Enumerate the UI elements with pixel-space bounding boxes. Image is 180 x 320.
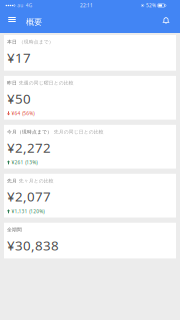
staticText: ¥1,131 bbox=[12, 208, 28, 214]
staticText: (120%) bbox=[29, 208, 44, 214]
staticText: 昨日 bbox=[7, 80, 17, 86]
staticText: 先月の同じ日との比較 bbox=[54, 129, 104, 135]
staticText: ¥2,272 bbox=[7, 138, 51, 157]
staticText: 全期間 bbox=[7, 227, 22, 233]
staticText: 4G bbox=[26, 2, 32, 9]
staticText: ¥30,838 bbox=[7, 236, 59, 254]
staticText: ¥261 bbox=[12, 159, 24, 166]
staticText: ¥64 bbox=[12, 110, 21, 117]
button[interactable]: Menu bbox=[4, 11, 20, 33]
staticText: ¥50 bbox=[7, 89, 31, 108]
staticText: ¥17 bbox=[7, 48, 31, 67]
staticText: 今月（現時点まで） bbox=[7, 129, 52, 135]
staticText: (13%) bbox=[25, 159, 37, 166]
staticText: 先週の同じ曜日との比較 bbox=[19, 80, 74, 86]
staticText: 概要 bbox=[26, 17, 42, 27]
staticText: (56%) bbox=[22, 110, 34, 117]
staticText: 本日 bbox=[7, 39, 17, 45]
staticText: 52% bbox=[146, 2, 156, 9]
staticText: 先々月との比較 bbox=[19, 178, 54, 184]
staticText: 先月 bbox=[7, 178, 17, 184]
staticText: 22:11 bbox=[80, 2, 93, 9]
staticText: au bbox=[17, 2, 23, 9]
staticText: ¥2,077 bbox=[7, 187, 51, 205]
button[interactable]: Notifications bbox=[158, 11, 174, 33]
staticText: （現時点まで） bbox=[19, 39, 54, 45]
